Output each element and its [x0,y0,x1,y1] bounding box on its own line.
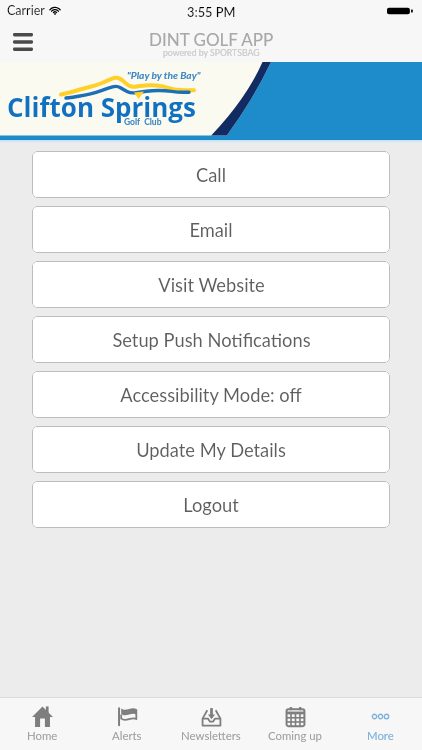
staticText: Golf Club [124,117,162,127]
button[interactable]: Logout [32,481,390,528]
button[interactable]: Visit Website [32,261,390,308]
button[interactable]: Accessibility Mode: off [32,371,390,418]
button[interactable]: Coming up [253,698,337,750]
staticText: Update My Details [136,439,286,461]
staticText: Clifton Springs [7,89,196,124]
button[interactable]: Update My Details [32,426,390,473]
staticText: "Play by the Bay" [127,69,201,81]
staticText: Carrier [7,3,45,18]
button[interactable]: Email [32,206,390,253]
staticText: 3:55 PM [187,4,236,19]
button[interactable]: Alerts [85,698,169,750]
staticText: powered by SPORTSBAG [163,47,260,57]
staticText: Call [196,164,226,186]
button[interactable]: Setup Push Notifications [32,316,390,363]
staticText: More [367,729,394,743]
staticText: Setup Push Notifications [112,329,311,351]
staticText: Newsletters [181,729,241,743]
staticText: Home [27,729,58,743]
staticText: Email [189,219,233,241]
button[interactable]: Newsletters [169,698,253,750]
button[interactable]: More [338,698,422,750]
button[interactable]: Menu [6,25,40,59]
button[interactable]: Home [0,698,84,750]
staticText: Visit Website [158,274,265,296]
staticText: Alerts [112,729,142,743]
staticText: Logout [183,494,239,516]
staticText: Coming up [268,729,322,743]
staticText: Accessibility Mode: off [120,384,302,406]
button[interactable]: Call [32,151,390,198]
staticText: DINT GOLF APP [149,29,274,49]
